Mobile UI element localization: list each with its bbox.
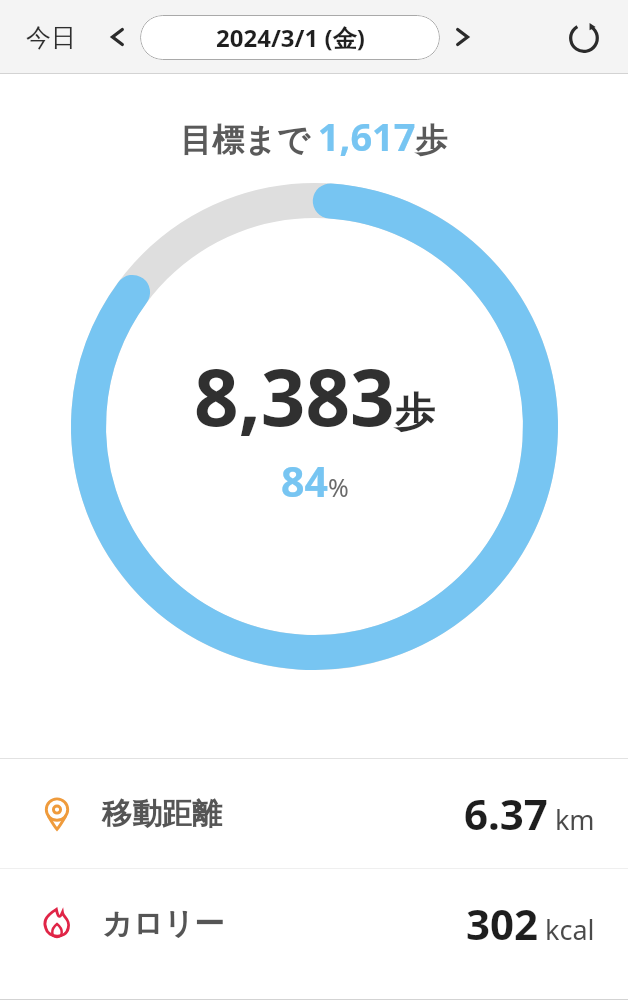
button[interactable]: 移動距離 <box>0 759 628 868</box>
staticText: 今日 <box>26 22 76 53</box>
staticText: 目標まで 1,617歩 <box>180 110 448 162</box>
button[interactable]: Next day <box>442 16 484 58</box>
staticText: 6.37 km <box>464 785 595 842</box>
staticText: 2024/3/1 (金) <box>216 21 365 54</box>
staticText: 移動距離 <box>102 795 222 833</box>
button[interactable]: カロリー <box>0 869 628 978</box>
staticText: カロリー <box>102 905 225 943</box>
button[interactable]: Refresh <box>560 13 608 61</box>
staticText: 8,383歩 <box>194 343 435 449</box>
staticText: 302 kcal <box>466 895 595 952</box>
staticText: 84% <box>281 453 349 509</box>
button[interactable]: 今日 <box>22 14 80 61</box>
button[interactable]: Previous day <box>96 16 138 58</box>
button[interactable]: 2024/3/1 (金) <box>140 15 440 60</box>
